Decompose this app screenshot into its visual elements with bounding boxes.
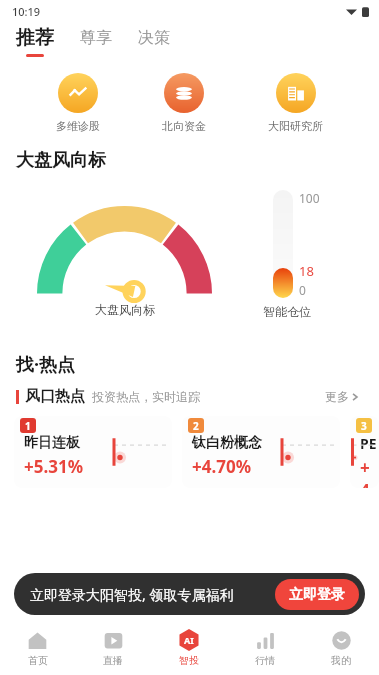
button[interactable]: 立即登录: [275, 579, 359, 610]
button[interactable]: 行情: [227, 621, 303, 675]
staticText: +4.: [360, 456, 379, 488]
staticText: +4.70%: [192, 455, 252, 478]
staticText: 大盘风向标: [16, 149, 106, 172]
staticText: PE: [360, 434, 377, 453]
button[interactable]: 首页: [0, 621, 75, 675]
staticText: 18: [299, 262, 314, 280]
staticText: 找·热点: [16, 352, 76, 377]
staticText: 多维诊股: [56, 119, 100, 133]
staticText: 10:19: [12, 4, 41, 19]
button[interactable]: 尊享: [78, 24, 114, 59]
button[interactable]: 直播: [75, 621, 151, 675]
staticText: 首页: [28, 654, 48, 667]
button[interactable]: 1: [14, 416, 172, 488]
staticText: 1: [25, 419, 31, 433]
button[interactable]: 大阳研究所: [262, 71, 329, 135]
staticText: 行情: [255, 654, 275, 667]
staticText: 我的: [331, 654, 351, 667]
staticText: 3: [361, 419, 367, 433]
button[interactable]: AI: [151, 621, 227, 675]
staticText: 智能仓位: [263, 304, 311, 319]
staticText: 尊享: [80, 28, 112, 48]
staticText: 昨日连板: [24, 434, 80, 452]
staticText: 0: [299, 282, 306, 298]
staticText: 2: [193, 419, 199, 433]
staticText: 100: [299, 190, 320, 206]
staticText: 直播: [103, 654, 123, 667]
staticText: 智投: [179, 654, 199, 667]
button[interactable]: 3: [350, 416, 379, 488]
staticText: 决策: [138, 28, 170, 48]
staticText: 大阳研究所: [268, 119, 323, 133]
button[interactable]: 多维诊股: [50, 71, 106, 135]
staticText: 风口热点: [25, 387, 85, 406]
button[interactable]: 决策: [136, 24, 172, 59]
staticText: 钛白粉概念: [192, 434, 262, 452]
staticText: 立即登录大阳智投, 领取专属福利: [30, 585, 234, 604]
button[interactable]: 我的: [303, 621, 379, 675]
staticText: +5.31%: [24, 455, 84, 478]
button[interactable]: 推荐: [14, 22, 56, 61]
staticText: 立即登录: [289, 586, 345, 604]
staticText: 推荐: [16, 26, 54, 50]
staticText: 更多: [325, 389, 349, 404]
staticText: AI: [184, 634, 194, 646]
staticText: 大盘风向标: [95, 302, 155, 317]
staticText: 投资热点，实时追踪: [92, 389, 200, 404]
staticText: 北向资金: [162, 119, 206, 133]
button[interactable]: 更多: [321, 385, 363, 408]
button[interactable]: 北向资金: [156, 71, 212, 135]
button[interactable]: 2: [182, 416, 340, 488]
button[interactable]: 立即登录大阳智投, 领取专属福利: [14, 573, 365, 615]
